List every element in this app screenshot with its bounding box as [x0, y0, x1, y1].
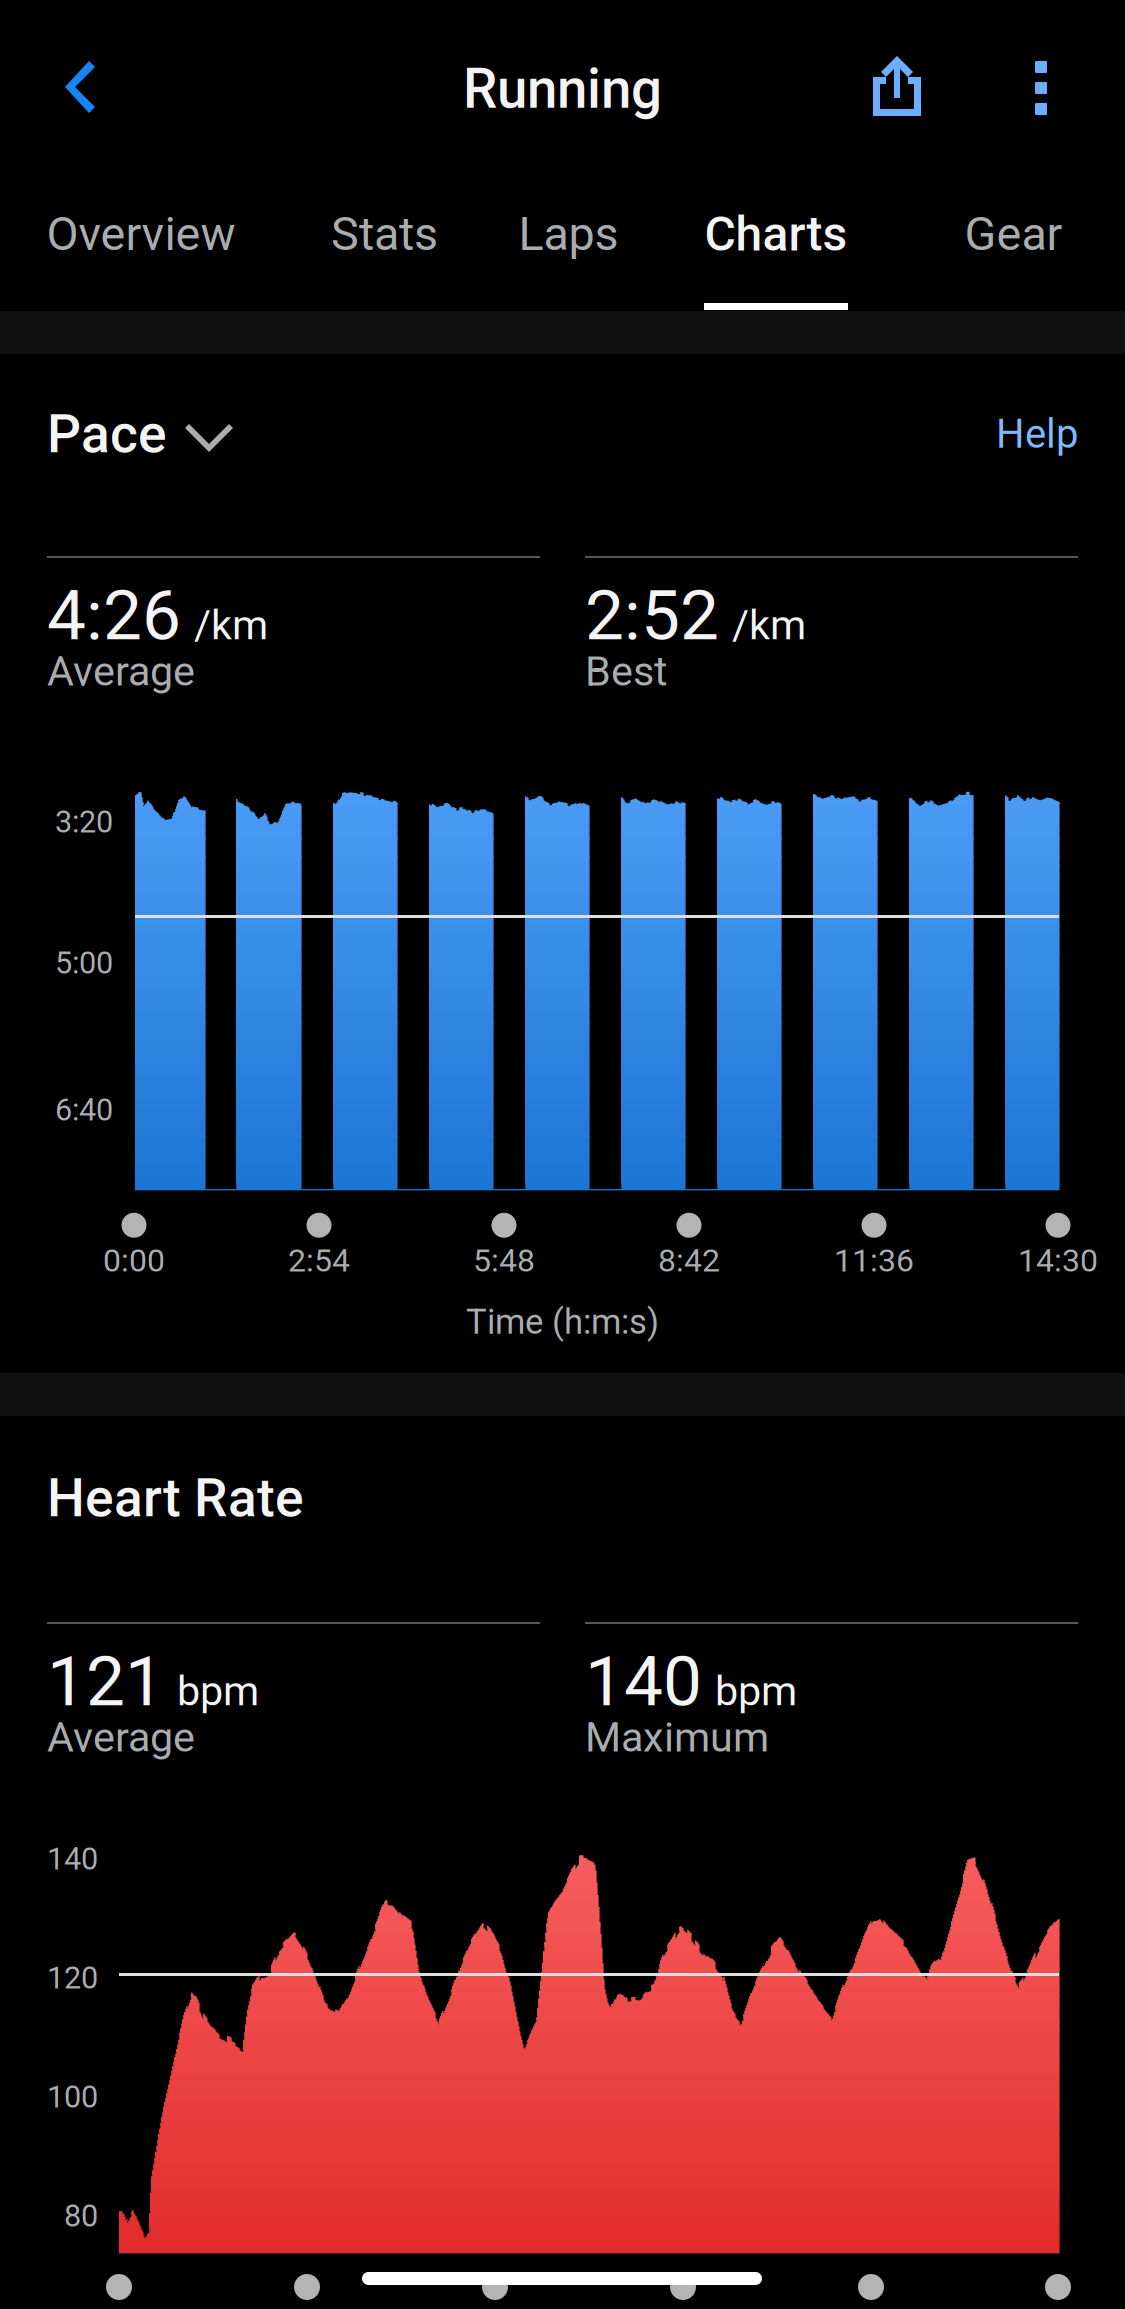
staticText: /km: [194, 601, 268, 649]
button[interactable]: Back: [16, 0, 144, 175]
staticText: 5:48: [473, 1242, 535, 1279]
staticText: 140: [585, 1641, 702, 1722]
staticText: 11:36: [834, 1242, 914, 1279]
staticText: 2:54: [288, 1242, 350, 1279]
button[interactable]: Help: [996, 404, 1078, 464]
staticText: Overview: [46, 207, 235, 261]
staticText: Time (h:m:s): [466, 1302, 659, 1342]
staticText: 140: [47, 1841, 98, 1877]
staticText: bpm: [715, 1667, 797, 1715]
staticText: 120: [47, 1960, 98, 1996]
button[interactable]: Pace: [47, 404, 231, 464]
button[interactable]: More options: [985, 0, 1097, 176]
staticText: Running: [463, 57, 662, 121]
staticText: 2:52: [585, 575, 719, 656]
staticText: Gear: [964, 207, 1062, 261]
staticText: Average: [47, 1713, 195, 1762]
staticText: 0:00: [103, 1242, 165, 1279]
staticText: Laps: [518, 207, 618, 261]
staticText: Heart Rate: [47, 1467, 304, 1529]
staticText: 80: [64, 2198, 98, 2234]
staticText: Charts: [704, 206, 847, 262]
staticText: 4:26: [47, 575, 181, 656]
staticText: Pace: [47, 403, 167, 465]
staticText: 14:30: [1018, 1242, 1098, 1279]
staticText: Average: [47, 647, 195, 696]
button[interactable]: Heart Rate: [47, 1468, 304, 1528]
staticText: 8:42: [658, 1242, 720, 1279]
staticText: 5:00: [55, 945, 113, 981]
staticText: /km: [732, 601, 806, 649]
button[interactable]: Share: [835, 0, 959, 174]
button[interactable]: Overview: [0, 175, 282, 311]
staticText: 100: [47, 2079, 98, 2115]
button[interactable]: Laps: [487, 175, 650, 311]
button[interactable]: Gear: [902, 175, 1125, 311]
staticText: 121: [47, 1641, 164, 1722]
button[interactable]: Stats: [282, 175, 487, 311]
staticText: bpm: [177, 1667, 259, 1715]
staticText: Stats: [331, 207, 438, 261]
staticText: Maximum: [585, 1713, 769, 1762]
staticText: 6:40: [55, 1092, 113, 1128]
staticText: Best: [585, 647, 668, 696]
button[interactable]: Charts: [650, 175, 902, 311]
staticText: Help: [996, 411, 1078, 457]
staticText: 3:20: [55, 804, 113, 840]
